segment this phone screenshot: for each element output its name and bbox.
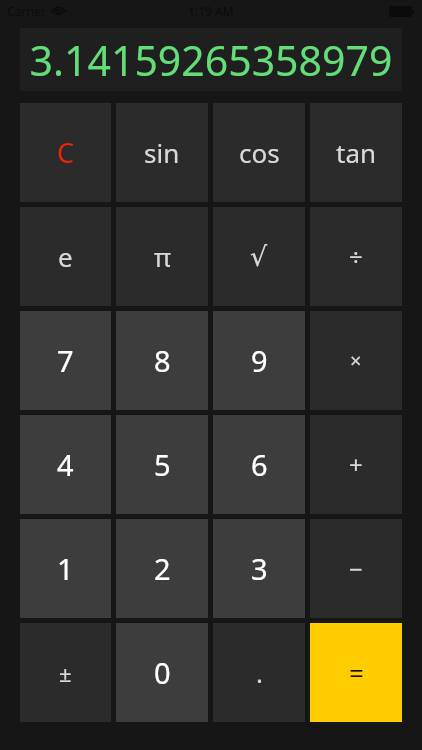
staticText: 5: [154, 445, 171, 484]
staticText: sin: [144, 135, 180, 170]
staticText: ×: [350, 347, 362, 374]
button[interactable]: 7: [20, 311, 111, 410]
button[interactable]: 5: [116, 415, 208, 514]
staticText: π: [154, 239, 171, 274]
button[interactable]: =: [310, 623, 402, 722]
button[interactable]: π: [116, 207, 208, 306]
button[interactable]: +: [310, 415, 402, 514]
staticText: C: [57, 134, 75, 171]
staticText: 9: [251, 341, 268, 380]
button[interactable]: cos: [213, 103, 305, 202]
staticText: 3.14159265358979: [25, 32, 397, 88]
staticText: +: [349, 448, 363, 481]
button[interactable]: sin: [116, 103, 208, 202]
staticText: e: [58, 239, 73, 274]
staticText: 0: [154, 653, 171, 692]
staticText: √: [250, 241, 268, 272]
button[interactable]: tan: [310, 103, 402, 202]
staticText: tan: [336, 135, 377, 170]
staticText: =: [349, 655, 364, 690]
staticText: ÷: [349, 240, 363, 273]
button[interactable]: 4: [20, 415, 111, 514]
staticText: 7: [57, 341, 74, 380]
staticText: 4: [57, 445, 74, 484]
button[interactable]: .: [213, 623, 305, 722]
button[interactable]: 9: [213, 311, 305, 410]
button[interactable]: −: [310, 519, 402, 618]
staticText: 1: [57, 549, 74, 588]
staticText: −: [349, 552, 363, 585]
button[interactable]: 0: [116, 623, 208, 722]
staticText: cos: [239, 135, 280, 170]
button[interactable]: C: [20, 103, 111, 202]
button[interactable]: 6: [213, 415, 305, 514]
button[interactable]: ÷: [310, 207, 402, 306]
button[interactable]: e: [20, 207, 111, 306]
staticText: 2: [154, 549, 171, 588]
staticText: 6: [251, 445, 268, 484]
button[interactable]: 2: [116, 519, 208, 618]
staticText: 3: [251, 549, 268, 588]
staticText: .: [256, 655, 263, 690]
button[interactable]: √: [213, 207, 305, 306]
button[interactable]: 8: [116, 311, 208, 410]
button[interactable]: 1: [20, 519, 111, 618]
staticText: 8: [154, 341, 171, 380]
button[interactable]: 3: [213, 519, 305, 618]
staticText: ±: [59, 658, 72, 688]
button[interactable]: ×: [310, 311, 402, 410]
button[interactable]: ±: [20, 623, 111, 722]
staticText: 1:19 AM: [188, 3, 234, 19]
